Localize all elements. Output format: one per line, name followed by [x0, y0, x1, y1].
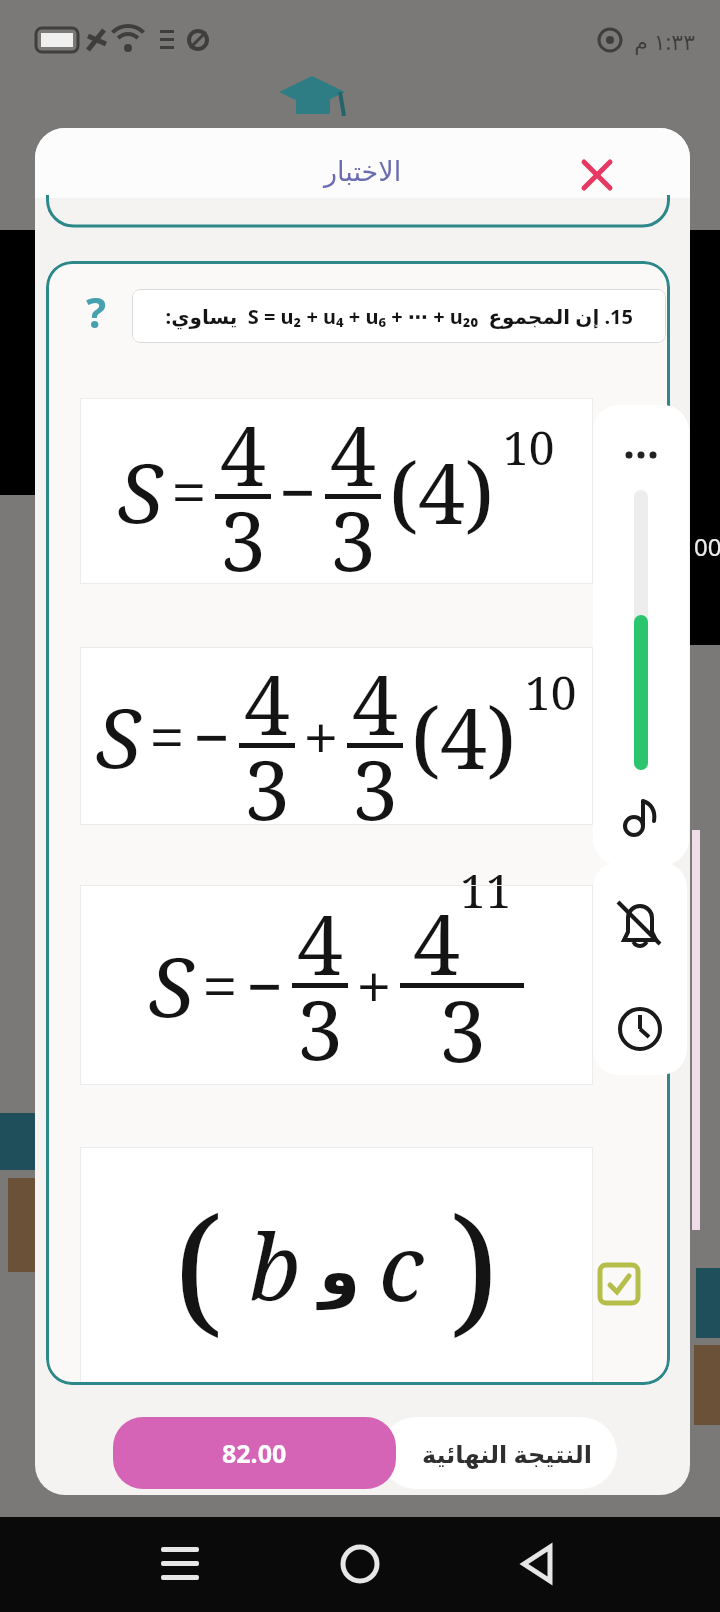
staticText: 3 [220, 483, 266, 584]
staticText: 4 [297, 887, 343, 999]
staticText: 00 [694, 530, 720, 563]
staticText: − [193, 693, 231, 780]
staticText: 4 [220, 398, 266, 510]
staticText: 3 [352, 732, 398, 825]
staticText: 11 [460, 859, 512, 922]
staticText: − [246, 942, 284, 1029]
button[interactable] [605, 998, 675, 1060]
staticText: و [319, 1233, 361, 1310]
staticText: 3 [330, 483, 376, 584]
button[interactable] [575, 153, 619, 197]
button[interactable]: ( [80, 1147, 593, 1383]
staticText: ١:٣٣ م [634, 26, 695, 56]
staticText: 4 [413, 885, 460, 999]
staticText: S [149, 929, 194, 1041]
button[interactable]: S [80, 647, 593, 825]
button[interactable] [607, 427, 675, 477]
button[interactable] [140, 1527, 220, 1601]
staticText: − [279, 448, 317, 535]
staticText: ( [174, 1170, 223, 1361]
button[interactable]: S [80, 885, 593, 1085]
staticText: ) [450, 1170, 499, 1361]
staticText: 4 [352, 647, 398, 759]
button[interactable] [607, 791, 675, 851]
staticText: b [249, 1203, 301, 1328]
button[interactable]: 82.00 [113, 1417, 396, 1489]
staticText: 3 [439, 972, 486, 1085]
button[interactable] [498, 1527, 578, 1601]
staticText: 10 [525, 661, 577, 724]
button[interactable] [598, 1263, 640, 1305]
staticText: + [356, 942, 392, 1029]
staticText: ? [86, 283, 107, 340]
button[interactable]: S [80, 398, 593, 584]
staticText: 3 [297, 972, 343, 1084]
staticText: = [202, 942, 238, 1029]
staticText: S [118, 435, 163, 547]
staticText: (4) [389, 434, 495, 548]
staticText: + [303, 693, 339, 780]
staticText: 82.00 [222, 1436, 287, 1470]
staticText: = [171, 448, 207, 535]
staticText: 3 [244, 732, 290, 825]
staticText: 10 [503, 416, 555, 479]
staticText: الاختبار [324, 156, 402, 187]
staticText: 4 [330, 398, 376, 510]
button[interactable] [607, 485, 675, 775]
button[interactable] [320, 1527, 400, 1601]
button[interactable] [605, 892, 675, 964]
staticText: = [149, 693, 185, 780]
staticText: النتيجة النهائية [422, 1437, 592, 1470]
staticText: S [96, 680, 141, 792]
staticText: c [379, 1203, 424, 1328]
staticText: 4 [244, 647, 290, 759]
staticText: (4) [411, 679, 517, 793]
staticText: 15. إن المجموع S = u₂ + u₄ + u₆ + ⋯ + u₂… [165, 303, 633, 330]
